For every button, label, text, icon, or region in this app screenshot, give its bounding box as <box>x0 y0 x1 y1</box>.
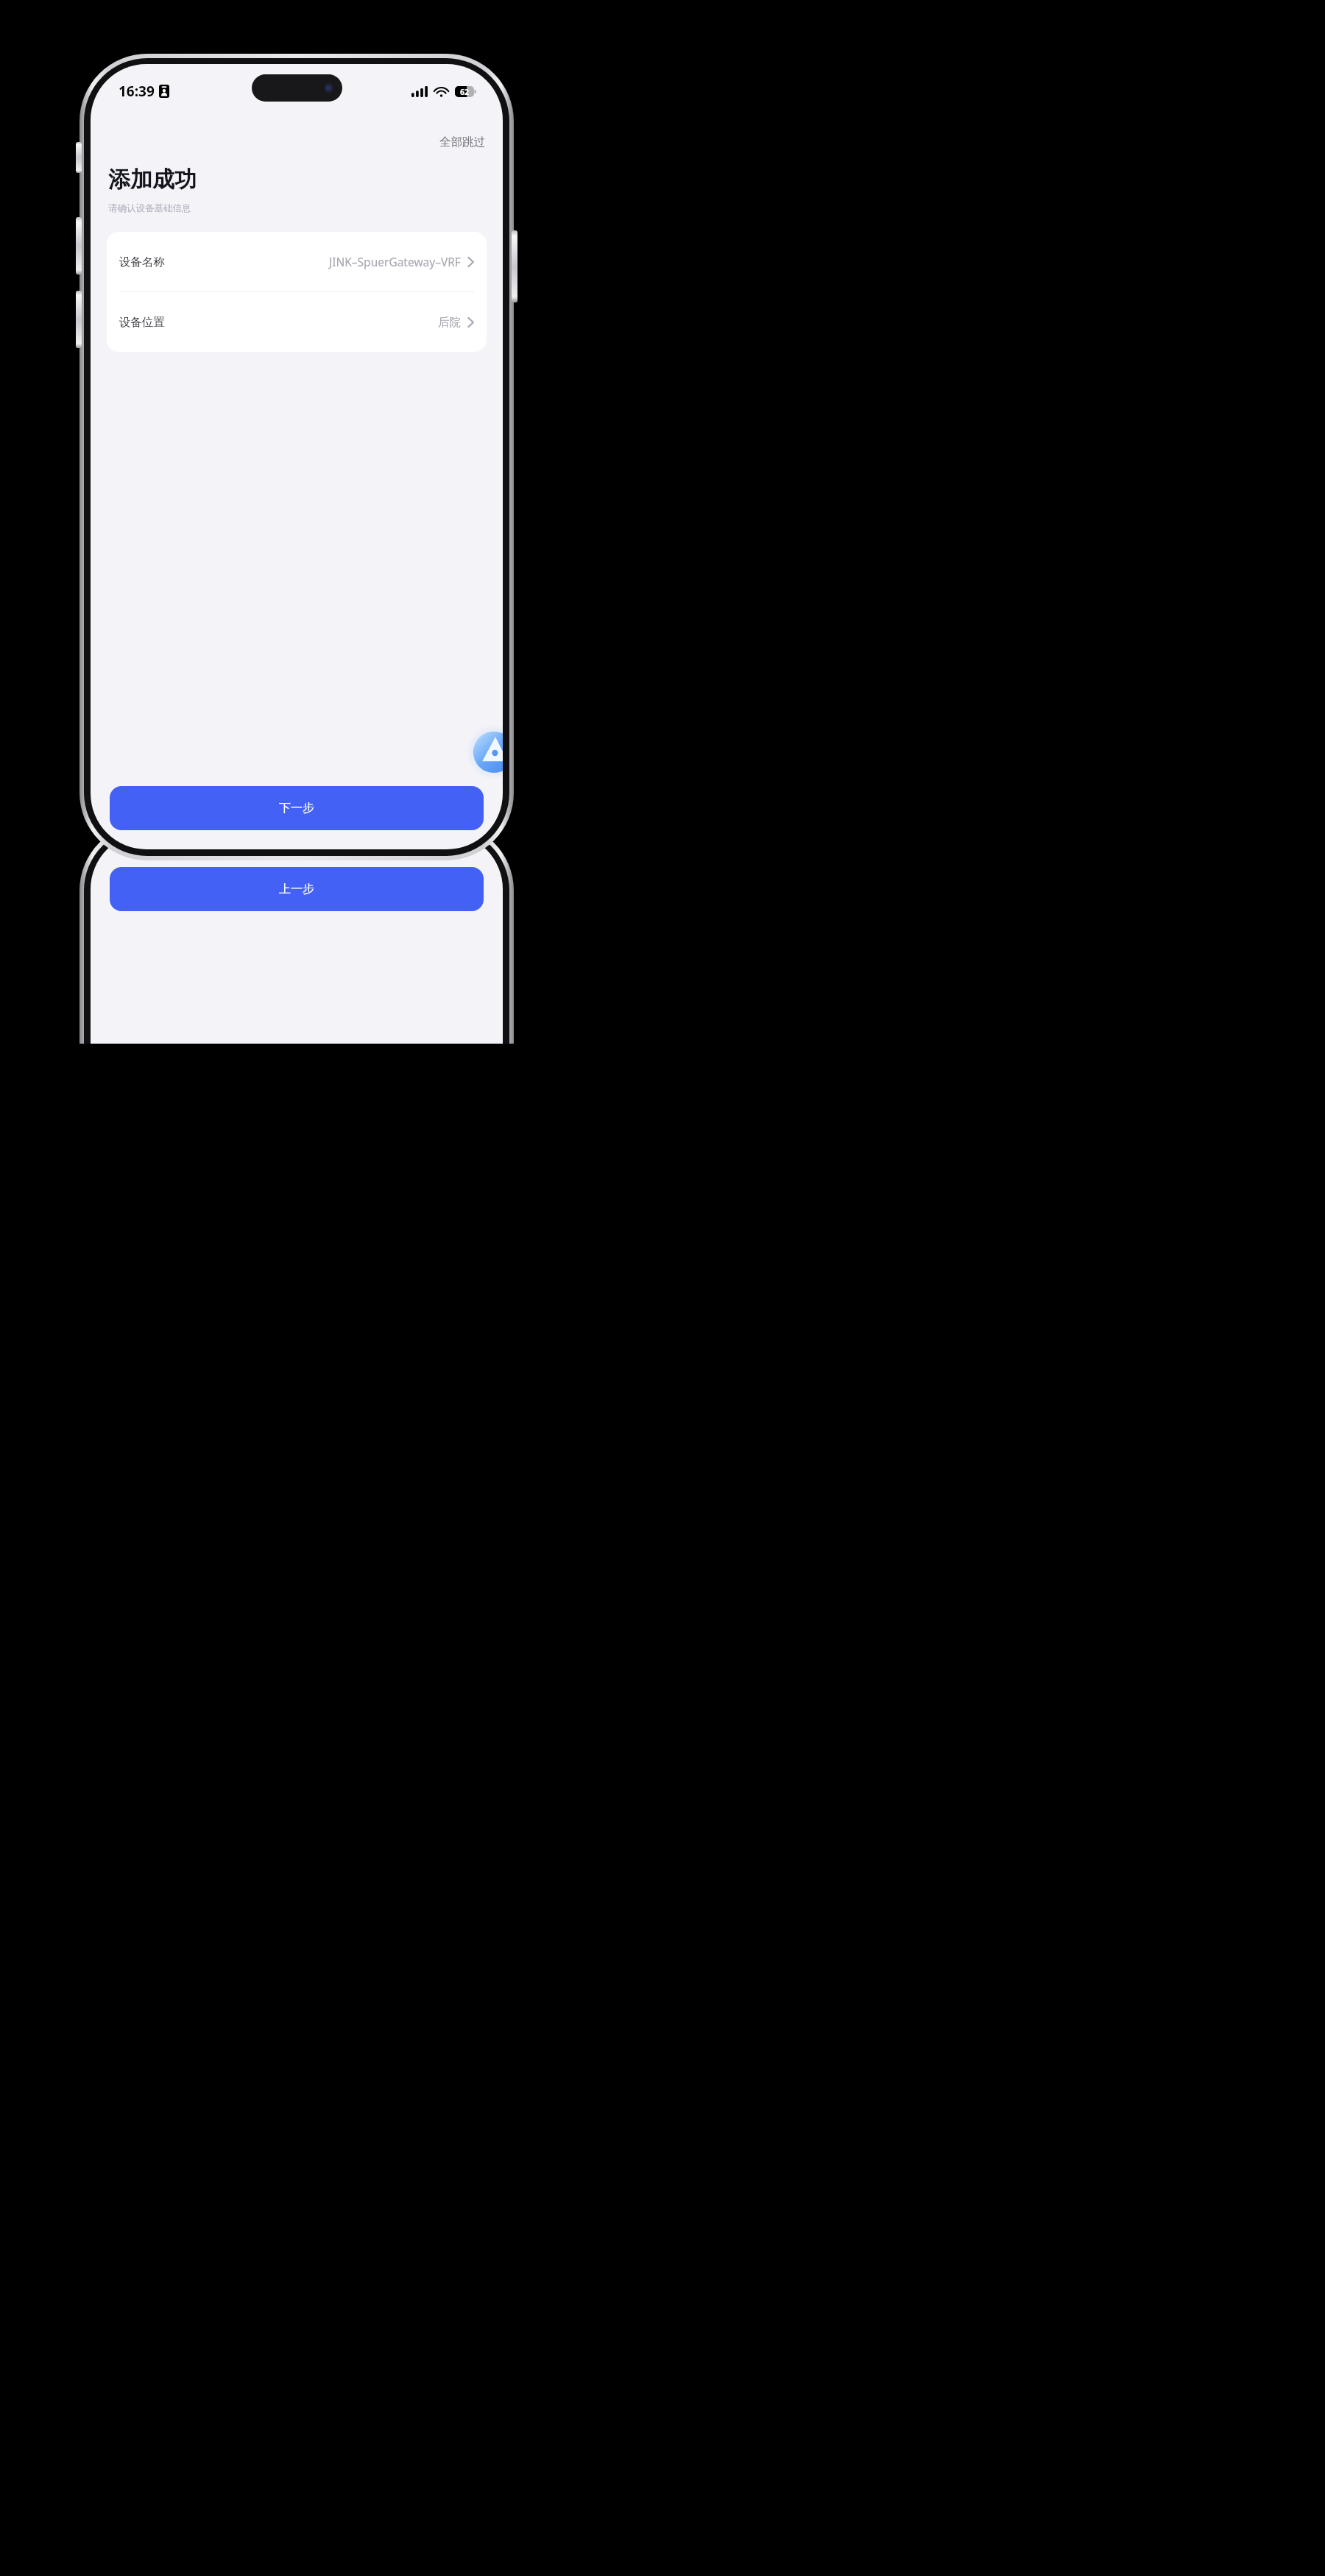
button[interactable]: 下一步 <box>110 786 484 830</box>
staticText: JINK–SpuerGateway–VRF <box>329 254 461 269</box>
button[interactable]: 设备位置 <box>107 292 487 352</box>
staticText: 请确认设备基础信息 <box>108 202 191 214</box>
staticText: 添加成功 <box>108 166 197 194</box>
staticText: 设备位置 <box>119 315 165 330</box>
staticText: 全部跳过 <box>439 135 485 149</box>
button[interactable]: 上一步 <box>110 867 484 911</box>
staticText: 设备名称 <box>119 255 165 269</box>
staticText: 16:39 <box>119 82 155 101</box>
staticText: 后院 <box>438 315 461 330</box>
staticText: 62 <box>460 87 470 97</box>
button[interactable]: AI assistant <box>466 724 503 780</box>
staticText: 上一步 <box>279 882 314 896</box>
staticText: 下一步 <box>279 801 314 815</box>
button[interactable]: 全部跳过 <box>422 130 503 154</box>
button[interactable]: 设备名称 <box>107 232 487 291</box>
